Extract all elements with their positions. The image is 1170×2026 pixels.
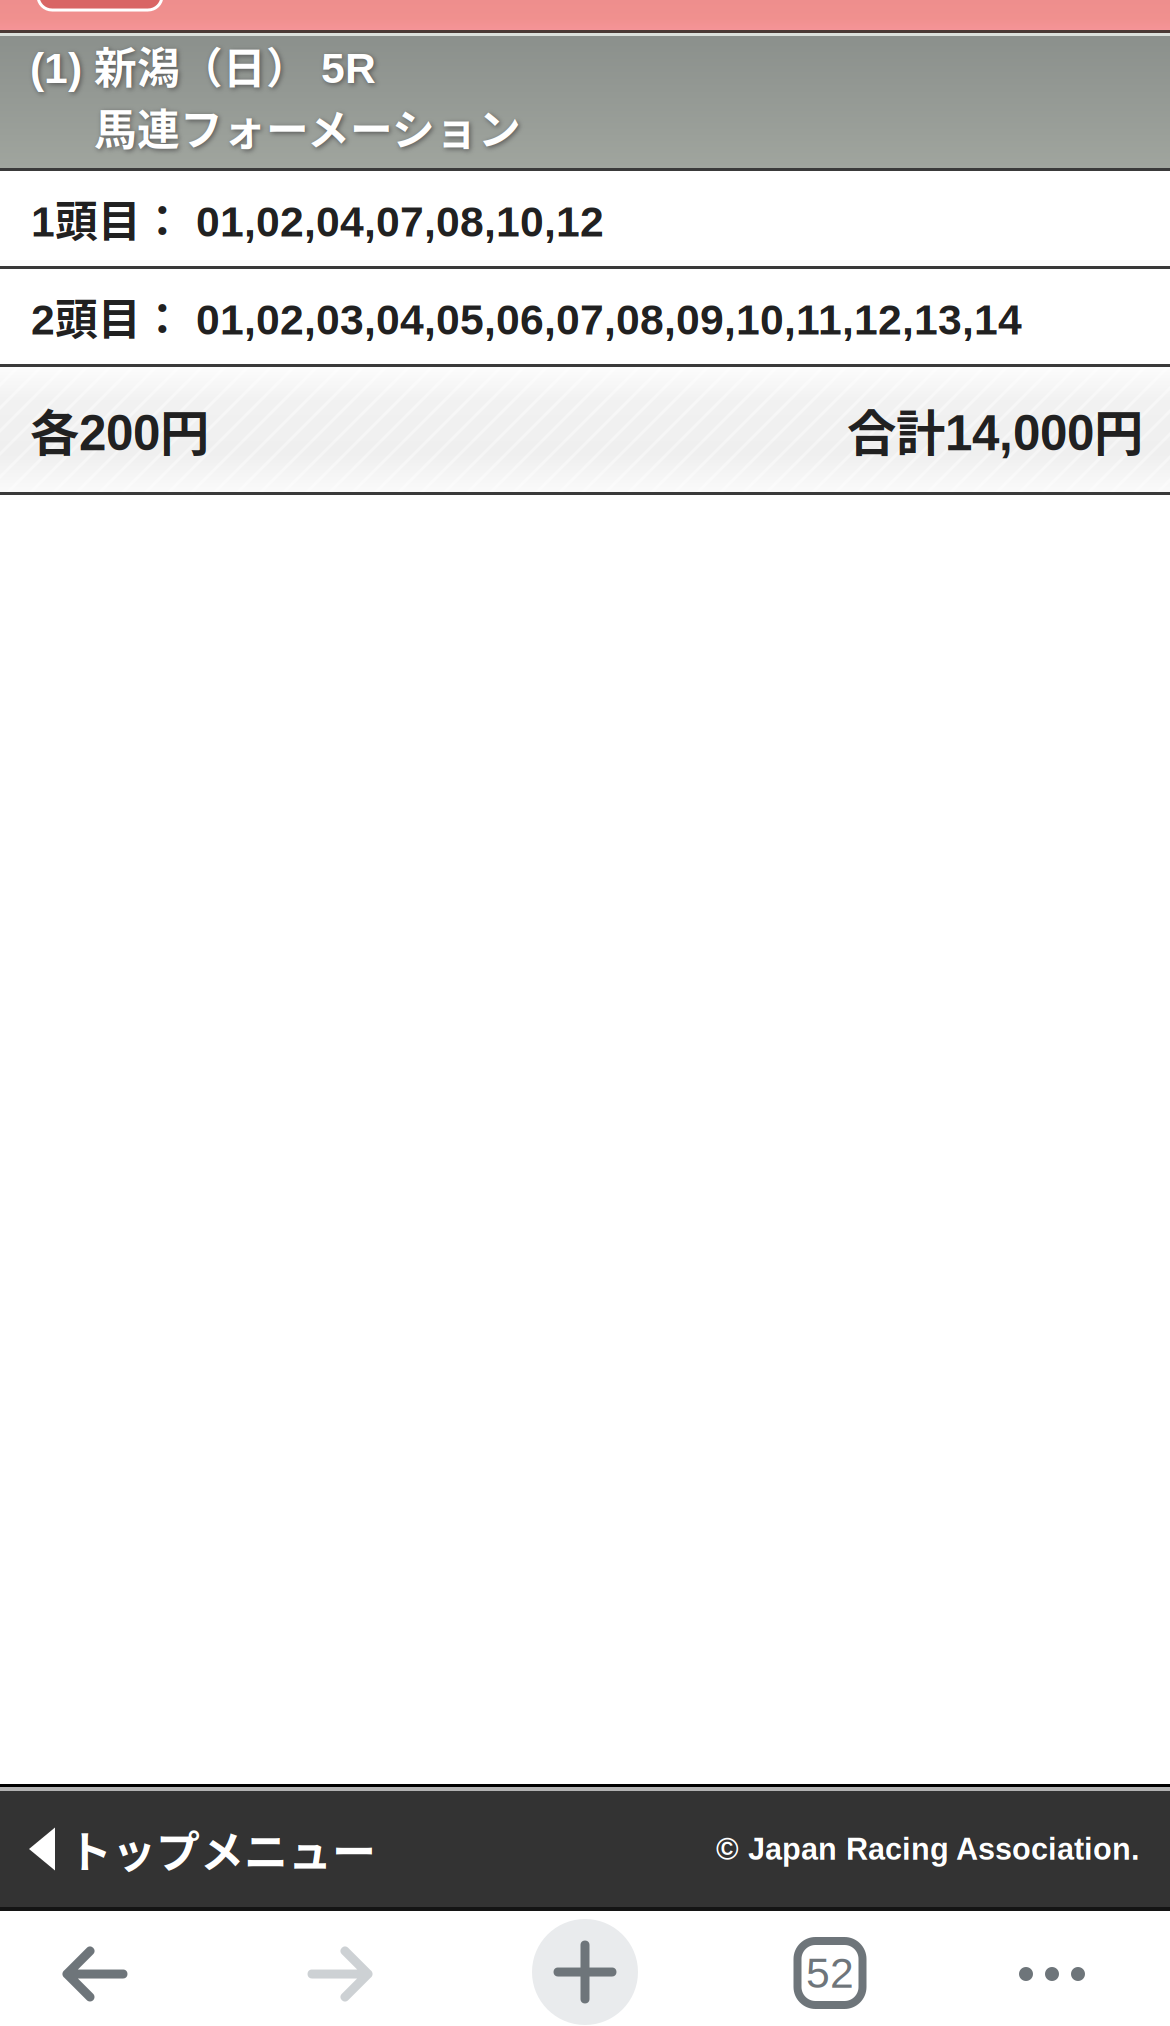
staticText: 合計14,000円 [847,394,1143,465]
button[interactable]: トップメニュー [0,1817,376,1881]
staticText: (1) 新潟（日） 5R [30,34,376,96]
staticText: 52 [806,1949,854,1997]
button[interactable]: More [1019,1946,1085,2002]
button[interactable]: Back [62,1946,128,2002]
staticText: © Japan Racing Association. [716,1832,1140,1866]
button[interactable]: Tabs [797,1941,862,2005]
staticText: 各200円 [30,394,209,465]
button[interactable]: New Tab [532,1919,638,2025]
button[interactable]: Forward [307,1946,373,2002]
staticText: 馬連フォーメーション [94,96,521,158]
staticText: トップメニュー [68,1817,376,1881]
staticText: 2頭目： 01,02,03,04,05,06,07,08,09,10,11,12… [31,286,1022,347]
staticText: 1頭目： 01,02,04,07,08,10,12 [31,188,604,249]
button[interactable]: Page header button [0,0,162,50]
